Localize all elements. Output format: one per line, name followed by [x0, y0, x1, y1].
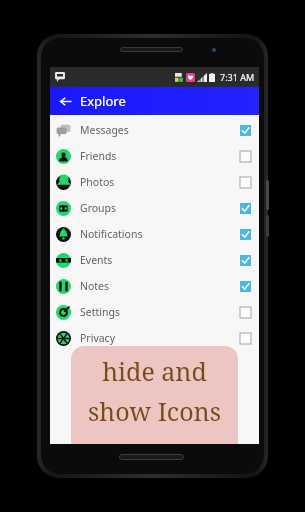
- staticText: 7:31 AM: [220, 71, 255, 83]
- staticText: Privacy: [80, 331, 116, 345]
- staticText: Friends: [80, 149, 117, 163]
- button[interactable]: Friends: [50, 143, 259, 169]
- staticText: show Icons: [88, 394, 221, 428]
- button[interactable]: Events: [50, 247, 259, 273]
- button[interactable]: Notifications: [50, 221, 259, 247]
- staticText: Groups: [80, 201, 117, 215]
- button[interactable]: Groups: [50, 195, 259, 221]
- button[interactable]: Checked: [240, 229, 251, 240]
- staticText: Messages: [80, 123, 129, 137]
- button[interactable]: hide and: [71, 346, 238, 444]
- staticText: Notifications: [80, 227, 143, 241]
- button[interactable]: Checked: [240, 281, 251, 292]
- button[interactable]: Unchecked: [240, 333, 251, 344]
- button[interactable]: Privacy: [50, 325, 259, 351]
- button[interactable]: Unchecked: [240, 177, 251, 188]
- button[interactable]: Notes: [50, 273, 259, 299]
- staticText: Events: [80, 253, 113, 267]
- button[interactable]: Checked: [240, 125, 251, 136]
- staticText: Settings: [80, 305, 120, 319]
- button[interactable]: Settings: [50, 299, 259, 325]
- button[interactable]: Unchecked: [240, 307, 251, 318]
- button[interactable]: Photos: [50, 169, 259, 195]
- button[interactable]: Unchecked: [240, 151, 251, 162]
- staticText: Notes: [80, 279, 110, 293]
- staticText: Explore: [80, 92, 126, 110]
- button[interactable]: Checked: [240, 255, 251, 266]
- button[interactable]: Checked: [240, 203, 251, 214]
- button[interactable]: Back: [54, 90, 76, 112]
- button[interactable]: Messages: [50, 117, 259, 143]
- staticText: hide and: [102, 354, 207, 388]
- staticText: Photos: [80, 175, 115, 189]
